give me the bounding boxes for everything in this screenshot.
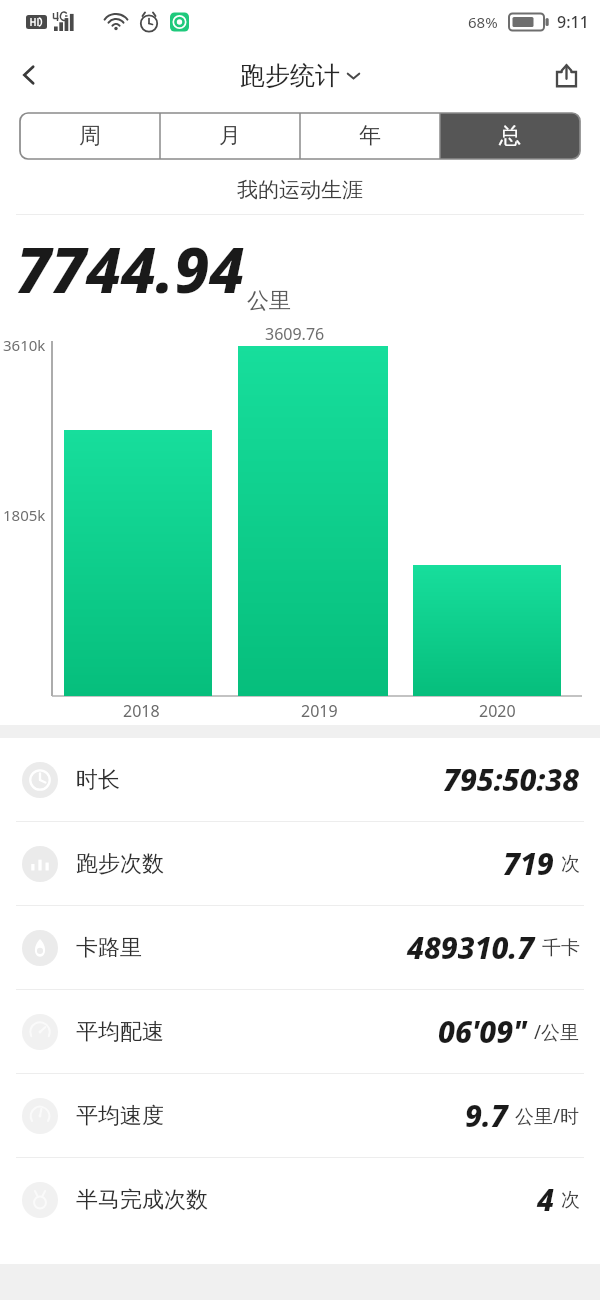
staticText: 2019 (301, 700, 338, 722)
button[interactable]: Back (0, 46, 58, 104)
button[interactable]: 平均配速 (0, 990, 600, 1073)
staticText: 68% (468, 12, 498, 32)
staticText: 2020 (479, 700, 516, 722)
button[interactable]: 总 (440, 113, 580, 159)
staticText: 次 (561, 852, 580, 876)
button[interactable]: 跑步次数 (0, 822, 600, 905)
staticText: 平均速度 (76, 1102, 164, 1130)
button[interactable]: 周 (20, 113, 160, 159)
button[interactable]: 月 (160, 113, 300, 159)
button[interactable]: 卡路里 (0, 906, 600, 989)
staticText: 9:11 (557, 11, 589, 33)
staticText: 489310.7 (407, 927, 535, 968)
staticText: 千卡 (542, 936, 580, 960)
button[interactable]: 年 (300, 113, 440, 159)
staticText: 次 (561, 1188, 580, 1212)
staticText: 我的运动生涯 (237, 177, 363, 203)
staticText: 719 (503, 843, 554, 884)
staticText: 3609.76 (265, 323, 325, 345)
staticText: 年 (359, 122, 381, 150)
staticText: 4 (537, 1179, 554, 1220)
staticText: 3610k (3, 335, 46, 355)
button[interactable]: 平均速度 (0, 1074, 600, 1157)
staticText: 2018 (123, 700, 160, 722)
staticText: 公里 (247, 287, 291, 315)
staticText: 06'09" (438, 1011, 527, 1052)
button[interactable]: 半马完成次数 (0, 1158, 600, 1241)
staticText: 跑步次数 (76, 850, 164, 878)
staticText: 7744.94 (16, 227, 245, 311)
staticText: /公里 (534, 1019, 580, 1045)
button[interactable]: 时长 (0, 738, 600, 821)
button[interactable]: Share (540, 49, 592, 101)
staticText: 跑步统计 (240, 60, 340, 91)
staticText: 半马完成次数 (76, 1186, 208, 1214)
staticText: 1805k (3, 505, 46, 525)
staticText: 总 (499, 122, 521, 150)
staticText: 周 (79, 122, 101, 150)
staticText: 795:50:38 (443, 759, 580, 800)
staticText: 平均配速 (76, 1018, 164, 1046)
staticText: 卡路里 (76, 934, 142, 962)
staticText: 公里/时 (515, 1103, 580, 1129)
staticText: 时长 (76, 766, 120, 794)
staticText: 月 (219, 122, 241, 150)
staticText: 9.7 (465, 1095, 508, 1136)
button[interactable]: 跑步统计 (240, 60, 361, 91)
